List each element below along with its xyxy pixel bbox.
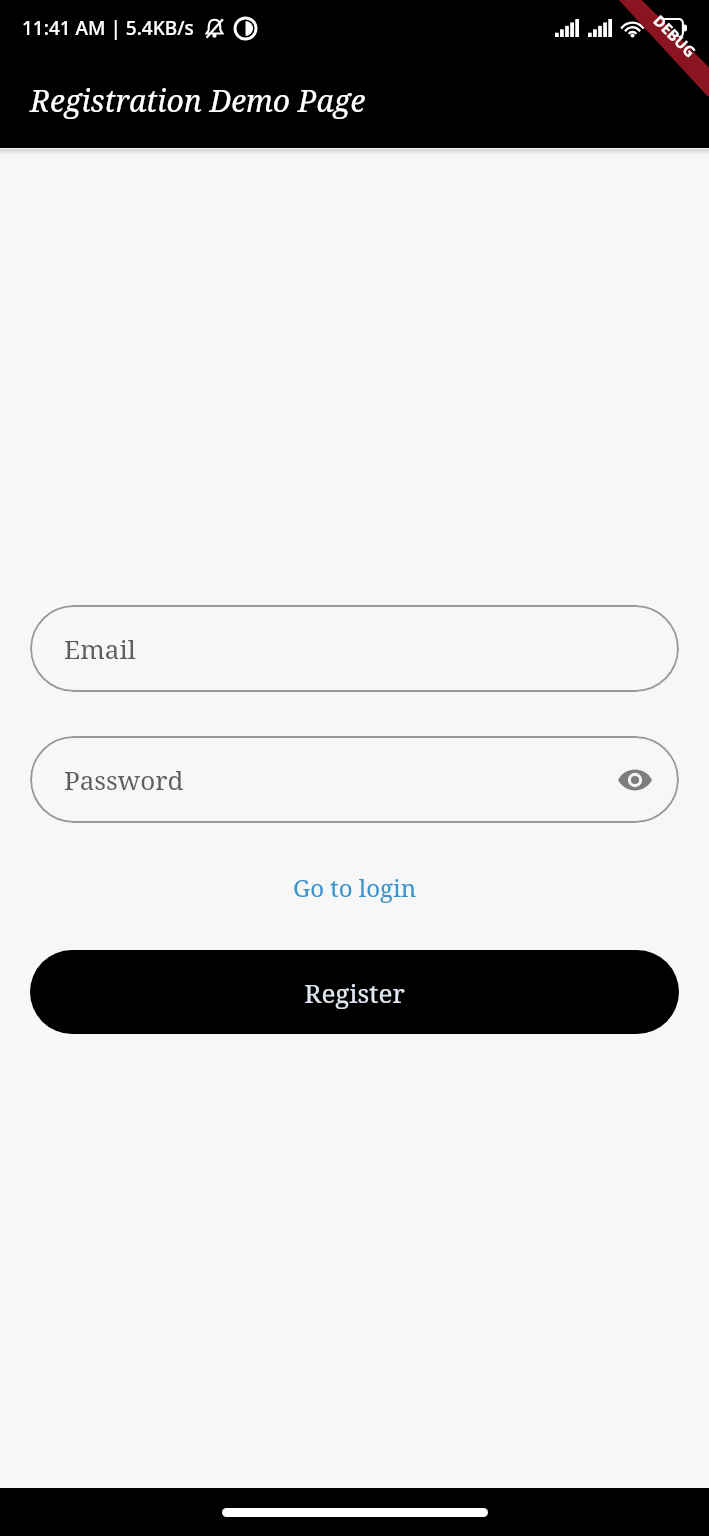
button[interactable]: Password — [30, 736, 679, 823]
button[interactable]: Go to login — [283, 867, 427, 908]
staticText: DEBUG — [649, 10, 700, 61]
staticText: 11:41 AM | 5.4KB/s — [22, 15, 194, 41]
staticText: Registration Demo Page — [30, 80, 366, 121]
staticText: Password — [64, 762, 184, 797]
staticText: Go to login — [293, 871, 417, 904]
button[interactable]: Email — [30, 605, 679, 692]
staticText: Email — [64, 631, 136, 666]
button[interactable]: Show password — [609, 754, 661, 806]
staticText: Register — [304, 975, 405, 1010]
button[interactable]: Register — [30, 950, 679, 1034]
